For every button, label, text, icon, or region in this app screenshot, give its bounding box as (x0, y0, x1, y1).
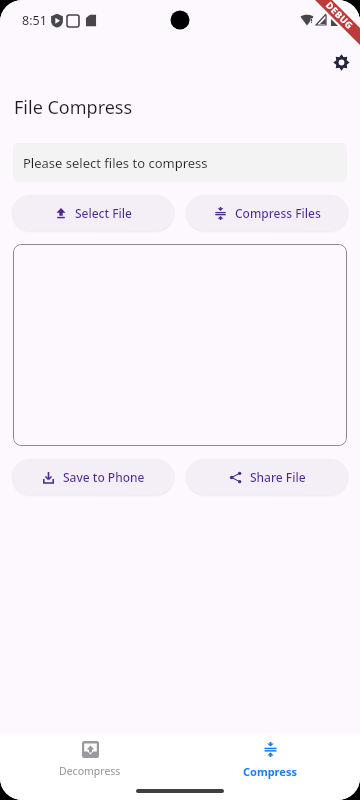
button[interactable]: Select File (12, 195, 174, 231)
staticText: Select File (75, 205, 132, 221)
staticText: Please select files to compress (23, 154, 208, 172)
staticText: Save to Phone (63, 469, 145, 485)
button[interactable]: Compress Files (186, 195, 348, 231)
button[interactable]: Decompress (0, 741, 180, 781)
staticText: File Compress (14, 95, 133, 120)
staticText: DEBUG (324, 0, 356, 31)
button[interactable]: Settings (325, 46, 357, 78)
staticText: 8:51 (22, 12, 47, 29)
button[interactable]: Share File (186, 459, 348, 495)
button[interactable]: Compress (180, 741, 360, 781)
staticText: Compress (243, 764, 297, 779)
staticText: Decompress (59, 764, 121, 778)
staticText: Share File (250, 469, 306, 485)
staticText: Compress Files (235, 205, 321, 221)
button[interactable]: Save to Phone (12, 459, 174, 495)
